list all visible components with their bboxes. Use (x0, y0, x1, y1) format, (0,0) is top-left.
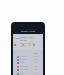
staticText: 9% (35, 65, 38, 68)
staticText: View (33, 52, 38, 55)
staticText: 18% (34, 58, 38, 61)
staticText: Battery usage (21, 30, 36, 33)
staticText: 7% (35, 68, 38, 71)
staticText: 41% (34, 55, 38, 58)
button[interactable]: Apps (13, 61, 43, 64)
staticText: 12% (34, 61, 38, 64)
staticText: Idle (20, 72, 24, 75)
button[interactable]: Camera (13, 68, 43, 71)
staticText: System (20, 58, 28, 61)
staticText: 100% (14, 36, 21, 39)
staticText: Apps (20, 61, 25, 64)
staticText: Camera (20, 68, 28, 71)
button[interactable]: Idle (13, 72, 43, 75)
staticText: 5% (35, 72, 38, 75)
button[interactable]: Screen (13, 55, 43, 58)
staticText: Network (20, 65, 29, 68)
button[interactable]: View (33, 52, 38, 55)
staticText: Battery level history (20, 36, 38, 42)
button[interactable]: System (13, 58, 43, 61)
button[interactable]: Network (13, 65, 43, 68)
staticText: Screen (20, 55, 27, 58)
staticText: Last 24 hours of use (20, 42, 38, 48)
